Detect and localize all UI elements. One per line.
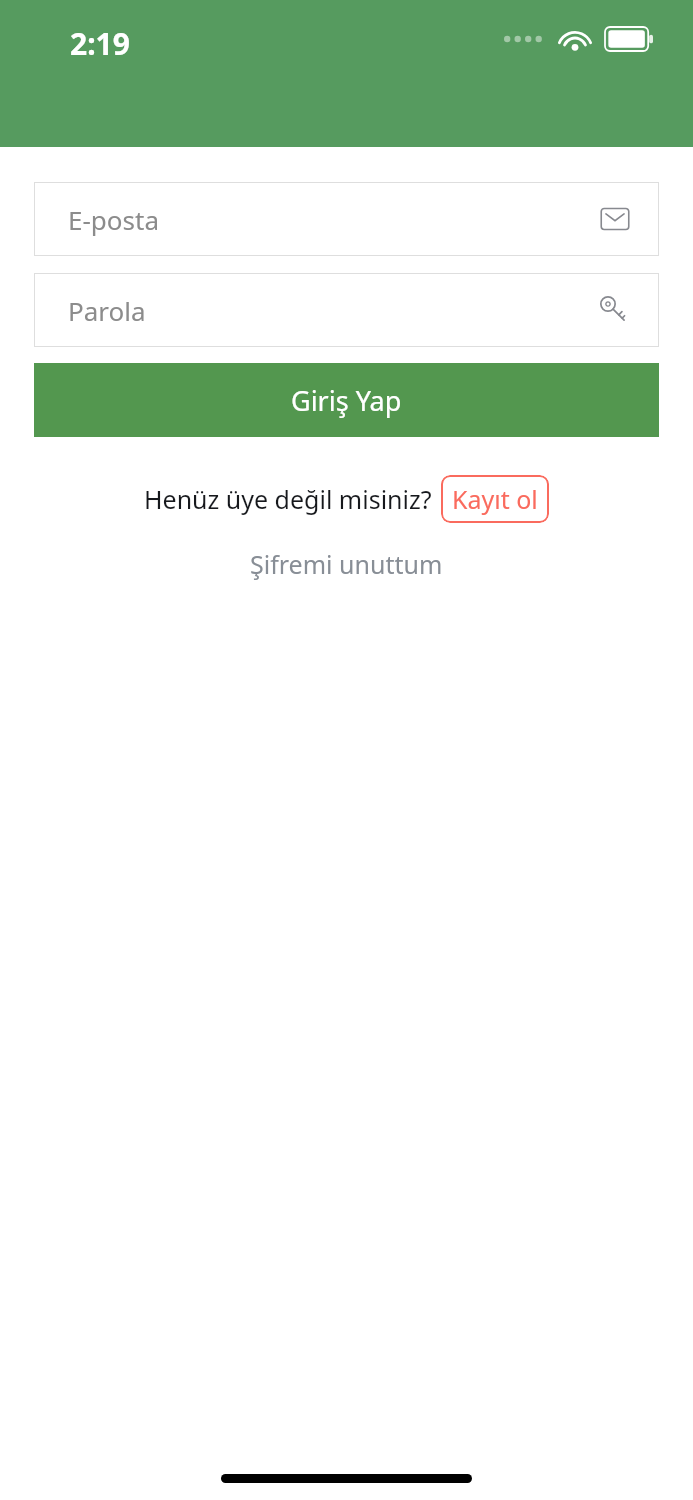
button[interactable]: E-posta [34,182,659,256]
staticText: Kayıt ol [452,482,538,516]
staticText: E-posta [68,202,159,237]
button[interactable]: Şifremi unuttum [238,541,455,587]
button[interactable]: Parola [34,273,659,347]
staticText: Şifremi unuttum [250,547,443,581]
staticText: Giriş Yap [291,382,402,419]
button[interactable]: Giriş Yap [34,363,659,437]
staticText: Henüz üye değil misiniz? [144,482,432,516]
other: E-mail [599,203,631,235]
staticText: Parola [68,293,146,328]
staticText: 2:19 [70,23,130,64]
other: Password [597,293,631,327]
button[interactable]: Kayıt ol [441,475,549,523]
